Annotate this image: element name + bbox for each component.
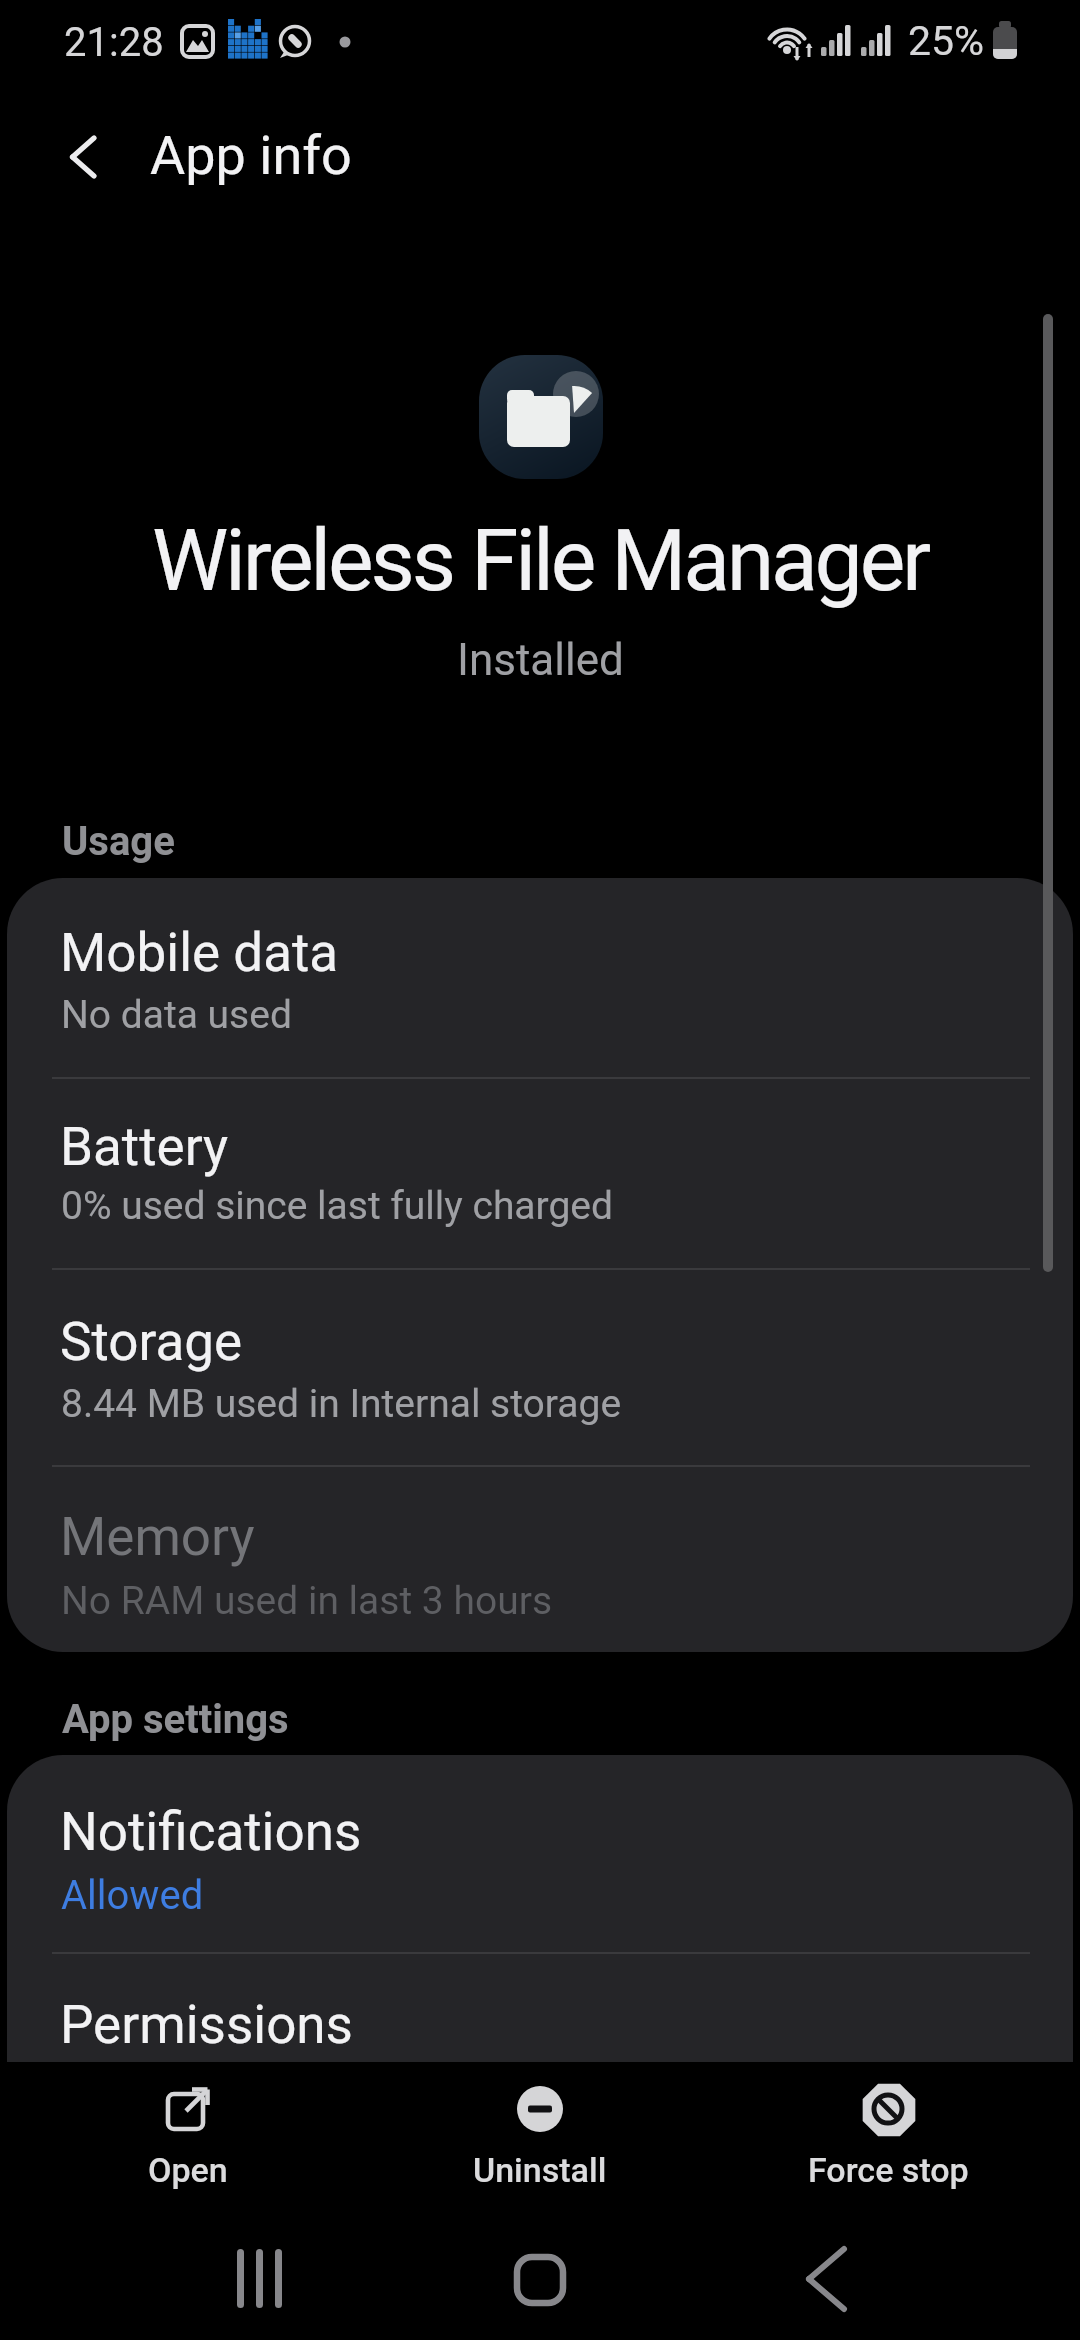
staticText: Battery — [60, 1116, 229, 1178]
button[interactable]: Force stop — [788, 2066, 988, 2202]
staticText: 8.44 MB used in Internal storage — [61, 1381, 622, 1427]
staticText: Storage — [60, 1311, 243, 1373]
staticText: Force stop — [808, 2150, 969, 2190]
staticText: Notifications — [60, 1801, 362, 1863]
button[interactable] — [7, 1079, 1073, 1268]
staticText: App settings — [62, 1696, 289, 1743]
button[interactable] — [760, 2230, 880, 2330]
staticText: App info — [150, 124, 352, 187]
button[interactable] — [480, 2230, 600, 2330]
button[interactable]: Uninstall — [440, 2066, 640, 2202]
staticText: Allowed — [61, 1872, 204, 1919]
staticText: Uninstall — [473, 2150, 607, 2190]
button[interactable] — [7, 1755, 1073, 1952]
staticText: No RAM used in last 3 hours — [61, 1578, 553, 1624]
button[interactable] — [7, 878, 1073, 1077]
staticText: Installed — [457, 634, 624, 686]
staticText: 21:28 — [64, 19, 164, 66]
staticText: 25% — [908, 17, 985, 65]
staticText: Permissions — [60, 1994, 353, 2056]
staticText: 0% used since last fully charged — [61, 1183, 613, 1229]
button[interactable]: Open — [88, 2066, 288, 2202]
staticText: Mobile data — [60, 922, 339, 984]
button[interactable] — [7, 1467, 1073, 1652]
staticText: Usage — [62, 818, 175, 865]
staticText: Open — [148, 2150, 228, 2190]
button[interactable] — [7, 1270, 1073, 1465]
button[interactable] — [7, 1954, 1073, 2062]
button[interactable] — [40, 115, 130, 200]
staticText: Memory — [60, 1506, 255, 1568]
staticText: No data used — [61, 992, 292, 1038]
staticText: Wireless File Manager — [152, 510, 929, 611]
button[interactable] — [200, 2230, 320, 2330]
